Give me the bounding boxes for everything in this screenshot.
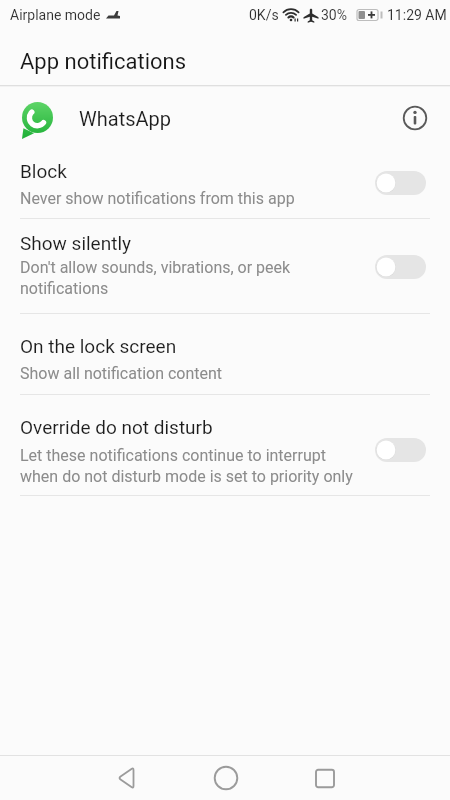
button[interactable] [375, 255, 426, 279]
button[interactable] [105, 757, 147, 799]
staticText: Don't allow sounds, vibrations, or peek … [20, 258, 291, 298]
staticText: 11:29 AM [387, 7, 447, 23]
staticText: 30% [321, 7, 347, 23]
staticText: Show silently [20, 232, 132, 254]
button[interactable]: On the lock screen [0, 314, 450, 394]
staticText: Never show notifications from this app [20, 189, 295, 208]
button[interactable]: Block [0, 152, 450, 218]
staticText: WhatsApp [79, 107, 172, 130]
staticText: App notifications [20, 49, 187, 75]
button[interactable] [304, 757, 346, 799]
button[interactable]: Override do not disturb [0, 395, 450, 495]
staticText: Let these notifications continue to inte… [20, 446, 353, 486]
staticText: Airplane mode [10, 7, 101, 23]
staticText: 0K/s [249, 7, 279, 23]
staticText: On the lock screen [20, 335, 177, 357]
staticText: Override do not disturb [20, 416, 213, 438]
button[interactable] [402, 105, 428, 131]
button[interactable] [375, 438, 426, 462]
staticText: Show all notification content [20, 364, 223, 383]
button[interactable] [205, 757, 247, 799]
button[interactable] [375, 171, 426, 195]
button[interactable]: WhatsApp [0, 87, 450, 149]
button[interactable]: Show silently [0, 219, 450, 313]
staticText: Block [20, 160, 67, 182]
